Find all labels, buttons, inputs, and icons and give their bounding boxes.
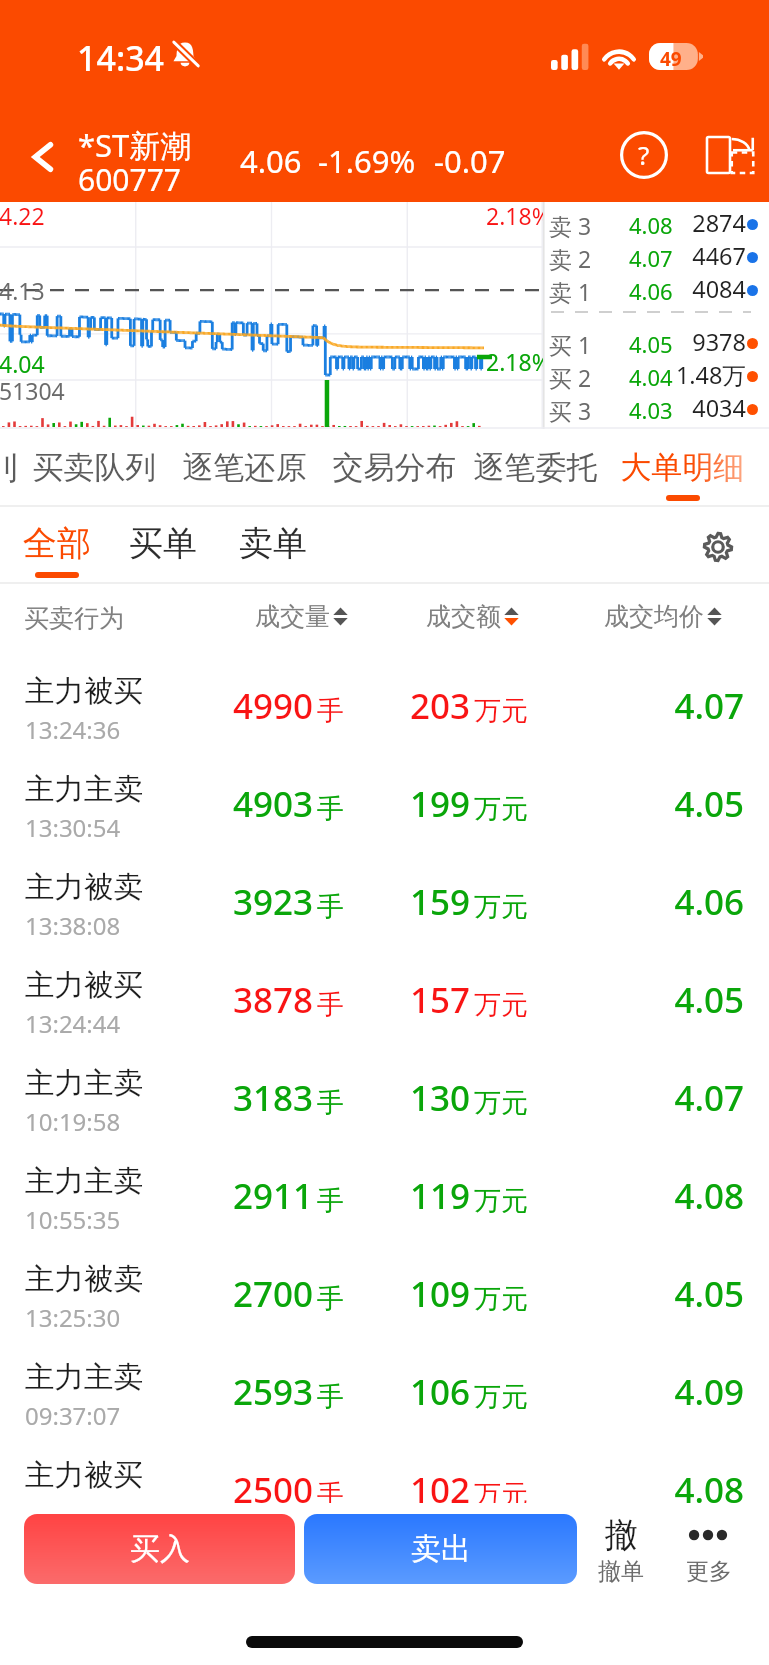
staticText: 4.05 [600, 780, 744, 828]
staticText: 逐笔还原 [181, 448, 308, 487]
staticText: 2593 [233, 1368, 314, 1416]
staticText: 手 [317, 1282, 344, 1316]
button[interactable]: 主力主卖 [0, 757, 769, 855]
staticText: 2.18% [486, 346, 543, 377]
staticText: 51304 [0, 375, 65, 406]
staticText: 万元 [474, 890, 528, 924]
staticText: 4903 [233, 780, 314, 828]
button[interactable]: 大单明细 [619, 429, 746, 507]
button[interactable]: 主力被买 [0, 1443, 769, 1503]
button[interactable]: 更多 [678, 1512, 740, 1588]
staticText: 成交额 [426, 601, 501, 632]
staticText: 买卖行为 [24, 603, 124, 634]
staticText: 交易分布 [331, 448, 458, 487]
staticText: 4.08 [629, 210, 673, 240]
staticText: ? [638, 137, 650, 172]
staticText: 4.04 [0, 348, 45, 379]
staticText: 买单 [128, 522, 198, 565]
button[interactable]: Help [610, 121, 678, 189]
staticText: 主力被买 [25, 1457, 143, 1494]
staticText: 主力被买 [25, 967, 143, 1004]
button[interactable]: 逐笔委托 [472, 429, 599, 507]
staticText: 13:30:54 [25, 811, 121, 844]
staticText: 4.06 [629, 276, 673, 306]
staticText: 手 [317, 1086, 344, 1120]
staticText: 卖出 [411, 1530, 471, 1568]
staticText: 卖单 [238, 522, 308, 565]
button[interactable]: 卖单 [238, 507, 308, 584]
staticText: 2.18% [486, 202, 543, 231]
button[interactable]: 买 1 [543, 326, 769, 359]
button[interactable]: Split screen [690, 121, 758, 189]
staticText: 手 [317, 792, 344, 826]
staticText: 4.07 [629, 243, 673, 273]
button[interactable]: 主力主卖 [0, 1149, 769, 1247]
button[interactable]: 卖出 [304, 1514, 577, 1584]
staticText: 撤单 [590, 1557, 652, 1586]
button[interactable]: 撤 [590, 1512, 652, 1588]
button[interactable]: 卖 2 [543, 240, 769, 273]
staticText: 14:34 [77, 35, 165, 81]
button[interactable]: 买 2 [543, 359, 769, 392]
button[interactable]: 逐笔还原 [181, 429, 308, 507]
staticText: 2874 [692, 207, 746, 239]
staticText: 49 [660, 46, 682, 72]
staticText: 4.05 [600, 976, 744, 1024]
button[interactable]: 主力主卖 [0, 1051, 769, 1149]
staticText: 3878 [233, 976, 314, 1024]
staticText: 4.08 [600, 1172, 744, 1220]
staticText: 4.06 [240, 140, 302, 182]
button[interactable]: 交易分布 [331, 429, 458, 507]
button[interactable]: 买 3 [543, 392, 769, 425]
staticText: 主力主卖 [25, 1359, 143, 1396]
staticText: 逐笔委托 [472, 448, 599, 487]
staticText: 4.13 [0, 275, 45, 306]
staticText: 主力被卖 [25, 869, 143, 906]
staticText: 9378 [692, 326, 746, 358]
staticText: 大单明细 [619, 448, 746, 487]
staticText: 卖 2 [549, 243, 592, 274]
staticText: 手 [317, 1380, 344, 1414]
staticText: 万元 [474, 1282, 528, 1316]
staticText: 4.07 [600, 1074, 744, 1122]
staticText: 4.05 [600, 1270, 744, 1318]
button[interactable]: 主力被买 [0, 953, 769, 1051]
staticText: 万元 [474, 1478, 528, 1503]
button[interactable]: Back [8, 122, 78, 192]
staticText: 万元 [474, 1184, 528, 1218]
staticText: 卖 1 [549, 276, 592, 307]
staticText: 主力主卖 [25, 771, 143, 808]
staticText: 1.48万 [675, 359, 746, 391]
button[interactable]: 买卖队列 [31, 429, 158, 507]
button[interactable]: 买入 [24, 1514, 295, 1584]
staticText: 2911 [233, 1172, 314, 1220]
staticText: 更多 [678, 1557, 740, 1586]
staticText: -0.07 [434, 140, 506, 182]
button[interactable]: 全部 [22, 507, 92, 584]
staticText: 09:37:07 [25, 1399, 121, 1432]
staticText: 手 [317, 1478, 344, 1503]
staticText: 买卖队列 [31, 448, 158, 487]
staticText: -1.69% [318, 140, 416, 182]
staticText: 119 [410, 1172, 471, 1220]
button[interactable]: 卖 1 [543, 273, 769, 306]
button[interactable]: 主力主卖 [0, 1345, 769, 1443]
staticText: 2700 [233, 1270, 314, 1318]
button[interactable]: 主力被卖 [0, 855, 769, 953]
button[interactable]: 卖 3 [543, 207, 769, 240]
staticText: 4.06 [600, 878, 744, 926]
button[interactable]: 主力被卖 [0, 1247, 769, 1345]
button[interactable]: 主力被买 [0, 659, 769, 757]
staticText: 4.08 [600, 1466, 744, 1503]
staticText: 4.05 [629, 329, 673, 359]
staticText: 买 2 [549, 362, 592, 393]
staticText: 600777 [78, 159, 181, 200]
staticText: 10:55:35 [25, 1203, 121, 1236]
staticText: 手 [317, 1184, 344, 1218]
staticText: 4084 [692, 273, 746, 305]
button[interactable]: Settings [695, 524, 741, 570]
button[interactable]: 买单 [128, 507, 198, 584]
staticText: 157 [410, 976, 471, 1024]
staticText: 199 [410, 780, 471, 828]
